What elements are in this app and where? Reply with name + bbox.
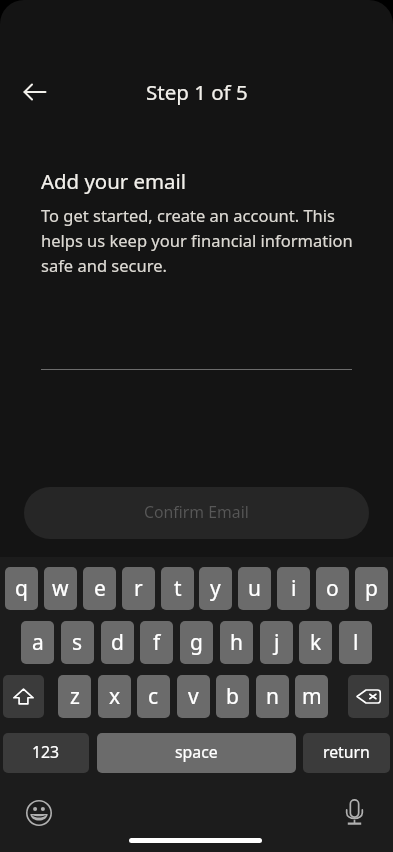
button[interactable]: i [277, 567, 310, 610]
staticText: g [190, 628, 203, 657]
button[interactable]: 123 [3, 733, 89, 773]
button[interactable]: h [220, 621, 253, 664]
staticText: y [210, 574, 221, 603]
staticText: v [188, 682, 199, 711]
staticText: e [94, 574, 106, 603]
button[interactable]: w [44, 567, 77, 610]
staticText: z [70, 682, 80, 711]
button[interactable]: z [58, 675, 91, 718]
staticText: r [134, 574, 143, 603]
staticText: h [230, 628, 243, 657]
button[interactable]: b [216, 675, 249, 718]
staticText: j [274, 628, 280, 657]
staticText: x [109, 682, 121, 711]
staticText: Confirm Email [144, 501, 249, 523]
button[interactable]: Back [23, 80, 47, 104]
button[interactable]: l [339, 621, 372, 664]
staticText: i [291, 574, 297, 603]
staticText: f [153, 628, 161, 657]
staticText: t [174, 574, 182, 603]
staticText: return [323, 741, 370, 763]
button[interactable]: u [238, 567, 271, 610]
button[interactable]: Backspace [348, 675, 389, 718]
button[interactable]: k [299, 621, 332, 664]
button[interactable]: n [256, 675, 289, 718]
button[interactable]: x [98, 675, 131, 718]
staticText: space [175, 741, 218, 763]
staticText: Step 1 of 5 [146, 78, 248, 106]
button[interactable]: j [260, 621, 293, 664]
button[interactable]: e [83, 567, 116, 610]
button[interactable]: v [177, 675, 210, 718]
button[interactable]: a [21, 621, 54, 664]
staticText: k [310, 628, 322, 657]
button[interactable]: space [97, 733, 296, 773]
staticText: b [226, 682, 239, 711]
staticText: d [111, 628, 124, 657]
button[interactable]: y [199, 567, 232, 610]
staticText: m [302, 682, 322, 711]
button[interactable]: o [316, 567, 349, 610]
staticText: a [32, 628, 44, 657]
button[interactable]: g [180, 621, 213, 664]
button[interactable]: r [122, 567, 155, 610]
staticText: Add your email [41, 167, 186, 195]
button[interactable]: m [295, 675, 328, 718]
staticText: o [326, 574, 339, 603]
button[interactable]: return [303, 733, 390, 773]
staticText: w [52, 574, 69, 603]
staticText: 123 [32, 741, 60, 763]
button[interactable]: d [101, 621, 134, 664]
button[interactable]: q [5, 567, 38, 610]
staticText: n [266, 682, 279, 711]
button[interactable]: Shift [3, 675, 44, 718]
button[interactable]: c [137, 675, 170, 718]
staticText: q [15, 574, 28, 603]
button[interactable]: Confirm Email [24, 487, 369, 539]
button[interactable]: p [355, 567, 388, 610]
button[interactable]: Emoji keyboard [26, 800, 52, 826]
staticText: s [72, 628, 83, 657]
staticText: u [248, 574, 261, 603]
staticText: l [353, 628, 359, 657]
button[interactable]: Voice input [346, 799, 363, 825]
button[interactable]: s [61, 621, 94, 664]
button[interactable]: t [161, 567, 194, 610]
staticText: To get started, create an account. This … [41, 204, 353, 277]
button[interactable]: f [140, 621, 173, 664]
staticText: p [365, 574, 378, 603]
staticText: c [148, 682, 159, 711]
